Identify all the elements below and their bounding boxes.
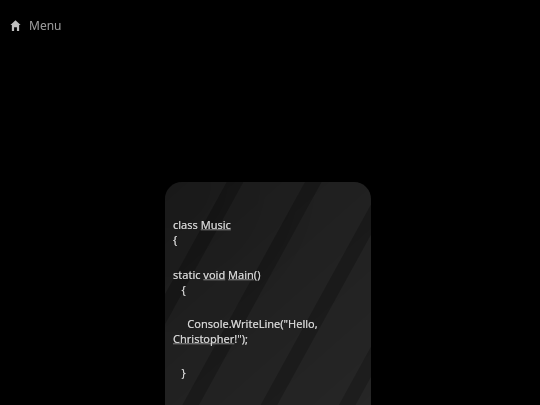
staticText: static void Main() [173, 267, 261, 282]
staticText: } [173, 365, 186, 380]
button[interactable]: Home [6, 14, 66, 36]
staticText: { [173, 282, 186, 297]
staticText: Christopher!"); [173, 331, 249, 346]
staticText: class Music [173, 217, 231, 232]
other: Home [10, 20, 21, 31]
staticText: { [173, 232, 178, 247]
staticText: Console.WriteLine("Hello, [173, 316, 318, 331]
button[interactable]: class Music [165, 182, 371, 405]
staticText: Menu [29, 17, 62, 33]
